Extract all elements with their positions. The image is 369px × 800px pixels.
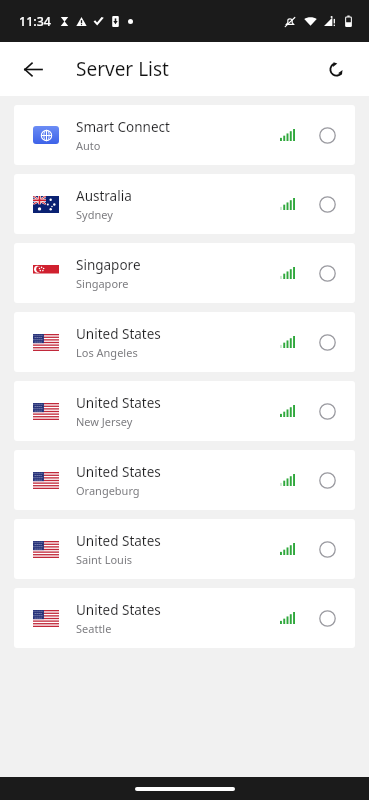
button[interactable]: Smart Connect xyxy=(14,105,355,165)
staticText: United States xyxy=(76,601,161,619)
staticText: Los Angeles xyxy=(76,345,138,360)
staticText: Sydney xyxy=(76,207,113,222)
button[interactable]: United States xyxy=(14,312,355,372)
button[interactable]: Back xyxy=(12,48,54,90)
staticText: Smart Connect xyxy=(76,118,170,136)
button[interactable]: Select Australia Sydney xyxy=(313,190,341,218)
button[interactable]: Singapore xyxy=(14,243,355,303)
button[interactable]: Australia xyxy=(14,174,355,234)
staticText: Orangeburg xyxy=(76,483,140,498)
staticText: United States xyxy=(76,325,161,343)
staticText: 11:34 xyxy=(19,13,52,30)
staticText: United States xyxy=(76,463,161,481)
staticText: Australia xyxy=(76,187,132,205)
button[interactable]: Refresh xyxy=(315,48,357,90)
staticText: Singapore xyxy=(76,276,129,291)
button[interactable]: United States xyxy=(14,381,355,441)
staticText: New Jersey xyxy=(76,414,133,429)
staticText: Seattle xyxy=(76,621,112,636)
staticText: Saint Louis xyxy=(76,552,133,567)
button[interactable]: United States xyxy=(14,588,355,648)
button[interactable]: United States xyxy=(14,519,355,579)
staticText: Server List xyxy=(76,56,169,82)
button[interactable]: Select Singapore Singapore xyxy=(313,259,341,287)
button[interactable]: Select United States Saint Louis xyxy=(313,535,341,563)
button[interactable]: Select United States New Jersey xyxy=(313,397,341,425)
staticText: Singapore xyxy=(76,256,141,274)
button[interactable]: Select United States Los Angeles xyxy=(313,328,341,356)
staticText: Auto xyxy=(76,138,101,153)
button[interactable]: Select Smart Connect Auto xyxy=(313,121,341,149)
button[interactable]: United States xyxy=(14,450,355,510)
staticText: United States xyxy=(76,394,161,412)
staticText: United States xyxy=(76,532,161,550)
button[interactable]: Select United States Orangeburg xyxy=(313,466,341,494)
button[interactable]: Select United States Seattle xyxy=(313,604,341,632)
